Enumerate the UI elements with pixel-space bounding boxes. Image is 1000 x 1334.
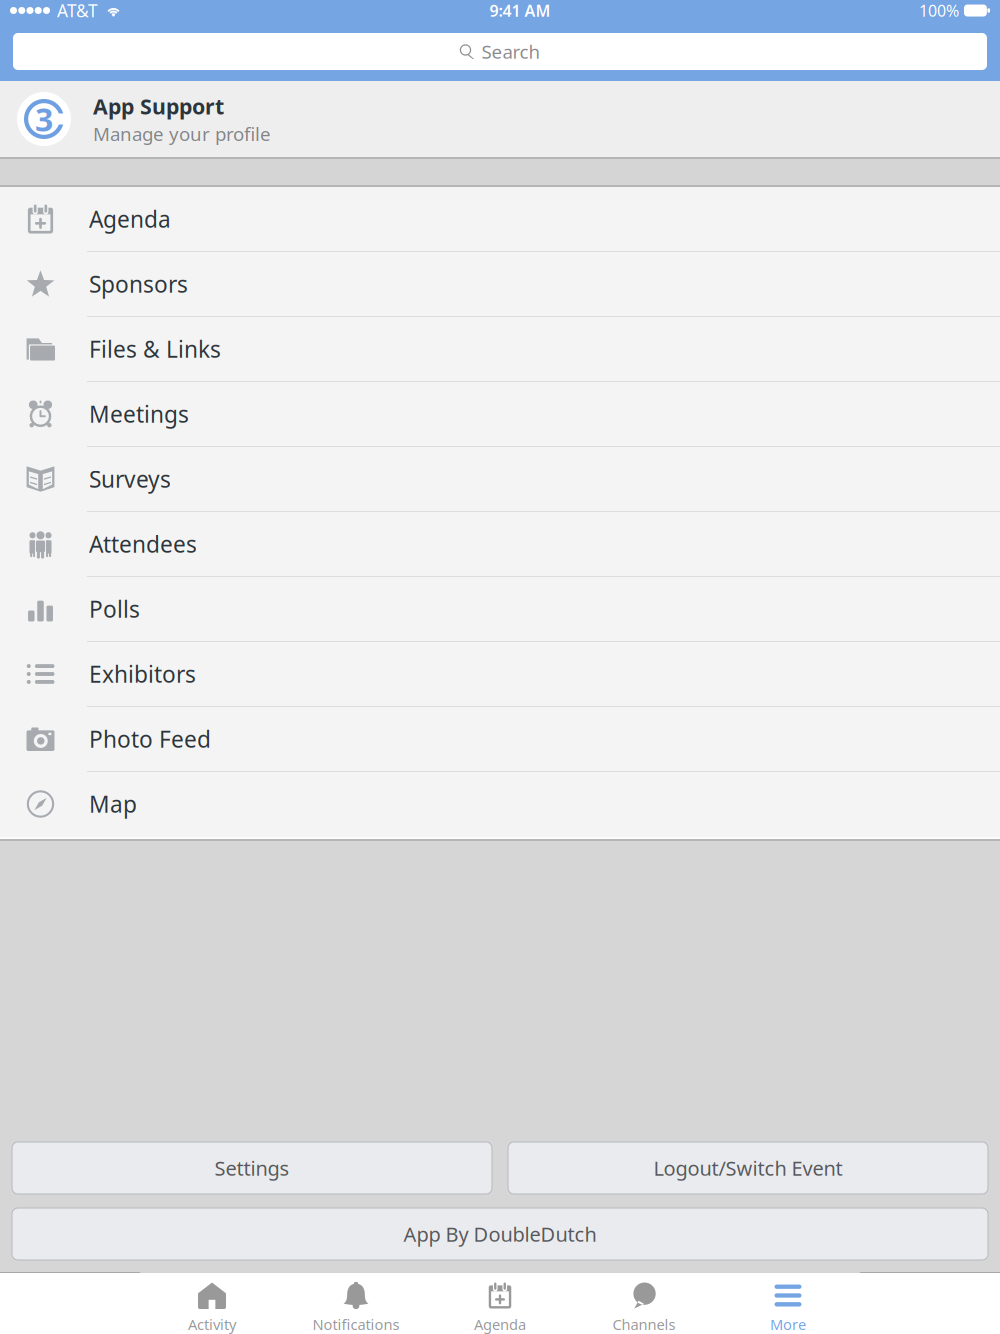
staticText: Settings [214,1155,289,1181]
staticText: Activity [188,1314,236,1334]
staticText: Logout/Switch Event [653,1155,842,1181]
staticText: AT&T [57,0,98,22]
staticText: More [770,1314,806,1334]
button[interactable]: Agenda [428,1272,572,1334]
staticText: Agenda [89,204,171,234]
button[interactable]: Attendees [0,512,1000,577]
button[interactable]: Map [0,772,1000,837]
staticText: Polls [89,594,140,624]
staticText: Channels [612,1314,675,1334]
button[interactable]: Sponsors [0,252,1000,317]
staticText: Exhibitors [89,659,196,689]
staticText: Manage your profile [93,121,271,146]
button[interactable]: 3 [0,81,1000,157]
button[interactable]: Activity [140,1272,284,1334]
staticText: Search [481,39,540,64]
button[interactable]: Files & Links [0,317,1000,382]
staticText: Files & Links [89,334,221,364]
staticText: App By DoubleDutch [403,1221,596,1247]
staticText: Sponsors [89,269,188,299]
button[interactable]: Photo Feed [0,707,1000,772]
button[interactable]: Logout/Switch Event [508,1142,988,1194]
button[interactable]: App By DoubleDutch [12,1208,988,1260]
staticText: 3 [35,98,53,140]
staticText: Notifications [312,1314,399,1334]
staticText: Meetings [89,399,189,429]
staticText: Map [89,789,137,819]
button[interactable]: More [716,1272,860,1334]
button[interactable]: Meetings [0,382,1000,447]
staticText: Agenda [474,1314,526,1334]
staticText: App Support [93,92,224,120]
staticText: 9:41 AM [489,0,550,21]
button[interactable]: Surveys [0,447,1000,512]
staticText: Photo Feed [89,724,211,754]
staticText: 100% [919,0,959,21]
button[interactable]: Polls [0,577,1000,642]
staticText: Surveys [89,464,171,494]
staticText: Attendees [89,529,197,559]
button[interactable]: Channels [572,1272,716,1334]
button[interactable]: Exhibitors [0,642,1000,707]
button[interactable]: Notifications [284,1272,428,1334]
button[interactable]: Agenda [0,187,1000,252]
button[interactable]: Settings [12,1142,492,1194]
